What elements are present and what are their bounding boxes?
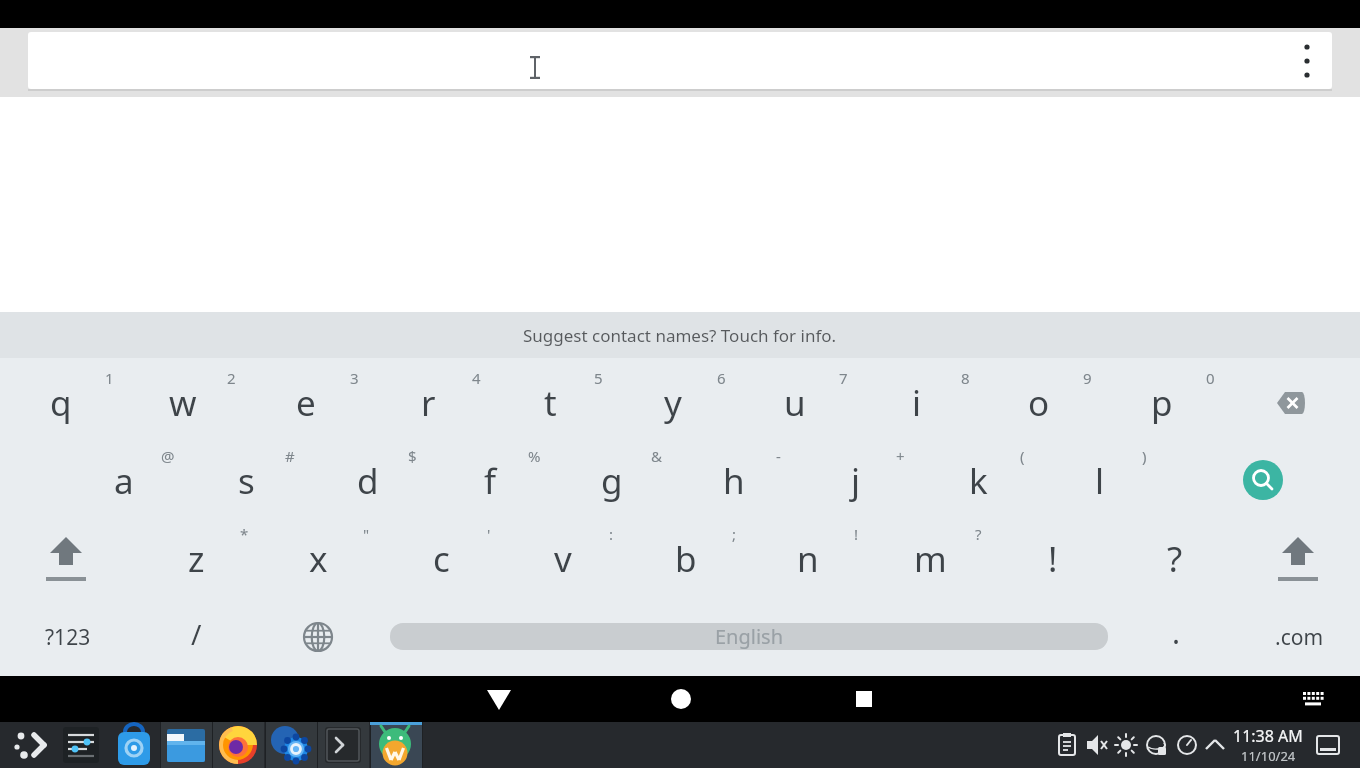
button[interactable]: k bbox=[923, 446, 1033, 516]
staticText: 11:38 AM bbox=[1233, 725, 1303, 747]
staticText: / bbox=[191, 615, 202, 653]
button[interactable]: 11:38 AM bbox=[1208, 724, 1328, 748]
staticText: # bbox=[285, 446, 295, 466]
button[interactable]: a bbox=[69, 446, 179, 516]
staticText: d bbox=[357, 457, 379, 505]
button[interactable]: / bbox=[141, 599, 251, 669]
staticText: " bbox=[363, 524, 370, 544]
staticText: 7 bbox=[839, 368, 848, 388]
button[interactable] bbox=[1261, 378, 1321, 428]
button[interactable] bbox=[1243, 460, 1283, 500]
staticText: .com bbox=[1275, 623, 1324, 652]
button[interactable] bbox=[317, 722, 369, 768]
staticText: - bbox=[776, 446, 781, 466]
button[interactable]: d bbox=[313, 446, 423, 516]
staticText: ; bbox=[732, 524, 737, 544]
button[interactable]: q bbox=[6, 368, 116, 438]
button[interactable] bbox=[1072, 722, 1120, 768]
button[interactable]: z bbox=[141, 524, 251, 594]
button[interactable] bbox=[1132, 722, 1180, 768]
staticText: r bbox=[421, 379, 436, 427]
button[interactable]: i bbox=[862, 368, 972, 438]
button[interactable]: r bbox=[373, 368, 483, 438]
button[interactable] bbox=[162, 722, 210, 768]
button[interactable]: f bbox=[435, 446, 545, 516]
button[interactable]: g bbox=[557, 446, 667, 516]
button[interactable] bbox=[1191, 722, 1239, 768]
staticText: y bbox=[664, 379, 682, 427]
button[interactable]: y bbox=[618, 368, 728, 438]
button[interactable] bbox=[371, 722, 419, 768]
button[interactable] bbox=[214, 722, 262, 768]
staticText: 8 bbox=[961, 368, 970, 388]
staticText: ( bbox=[1020, 446, 1025, 466]
button[interactable]: j bbox=[801, 446, 911, 516]
staticText: o bbox=[1028, 379, 1050, 427]
button[interactable]: b bbox=[631, 524, 741, 594]
staticText: 3 bbox=[350, 368, 359, 388]
button[interactable] bbox=[288, 607, 348, 667]
button[interactable] bbox=[842, 676, 886, 722]
button[interactable]: t bbox=[495, 368, 605, 438]
button[interactable]: ?123 bbox=[13, 602, 123, 672]
staticText: ?123 bbox=[45, 623, 91, 652]
button[interactable] bbox=[1304, 43, 1310, 79]
button[interactable] bbox=[659, 676, 703, 722]
staticText: e bbox=[296, 379, 316, 427]
button[interactable]: u bbox=[740, 368, 850, 438]
staticText: z bbox=[188, 535, 205, 583]
button[interactable]: s bbox=[191, 446, 301, 516]
button[interactable]: n bbox=[753, 524, 863, 594]
button[interactable] bbox=[265, 722, 317, 768]
staticText: a bbox=[114, 457, 134, 505]
button[interactable] bbox=[110, 722, 158, 768]
button[interactable]: p bbox=[1107, 368, 1217, 438]
staticText: k bbox=[969, 457, 988, 505]
button[interactable]: m bbox=[875, 524, 985, 594]
staticText: 9 bbox=[1083, 368, 1092, 388]
button[interactable]: ! bbox=[998, 524, 1108, 594]
button[interactable]: h bbox=[679, 446, 789, 516]
staticText: n bbox=[797, 535, 819, 583]
staticText: j bbox=[851, 457, 861, 505]
staticText: ' bbox=[487, 524, 491, 544]
button[interactable]: ? bbox=[1120, 524, 1230, 594]
staticText: g bbox=[601, 457, 623, 505]
button[interactable] bbox=[212, 722, 264, 768]
button[interactable]: . bbox=[1121, 597, 1231, 667]
button[interactable]: w bbox=[128, 368, 238, 438]
button[interactable]: Suggest contact names? Touch for info. bbox=[0, 312, 1360, 358]
button[interactable] bbox=[319, 722, 367, 768]
button[interactable]: e bbox=[251, 368, 361, 438]
button[interactable] bbox=[1163, 722, 1211, 768]
button[interactable] bbox=[477, 676, 521, 722]
button[interactable]: English bbox=[390, 623, 1108, 650]
button[interactable] bbox=[1102, 722, 1150, 768]
button[interactable] bbox=[28, 32, 1332, 89]
staticText: f bbox=[484, 457, 497, 505]
button[interactable] bbox=[9, 722, 57, 768]
button[interactable] bbox=[57, 722, 105, 768]
button[interactable]: l bbox=[1045, 446, 1155, 516]
staticText: + bbox=[896, 446, 905, 466]
button[interactable] bbox=[160, 722, 212, 768]
button[interactable] bbox=[36, 529, 96, 589]
staticText: ? bbox=[1167, 535, 1183, 583]
staticText: p bbox=[1151, 379, 1173, 427]
button[interactable]: v bbox=[508, 524, 618, 594]
button[interactable]: o bbox=[984, 368, 1094, 438]
button[interactable] bbox=[1291, 676, 1335, 722]
button[interactable] bbox=[1304, 722, 1352, 768]
button[interactable] bbox=[1268, 529, 1328, 589]
staticText: m bbox=[914, 535, 947, 583]
staticText: 2 bbox=[227, 368, 236, 388]
button[interactable]: c bbox=[386, 524, 496, 594]
button[interactable] bbox=[370, 722, 422, 768]
button[interactable] bbox=[267, 722, 315, 768]
button[interactable]: x bbox=[263, 524, 373, 594]
staticText: 6 bbox=[717, 368, 726, 388]
staticText: & bbox=[651, 446, 662, 466]
button[interactable] bbox=[1043, 722, 1091, 768]
staticText: x bbox=[309, 535, 328, 583]
button[interactable]: .com bbox=[1244, 602, 1354, 672]
